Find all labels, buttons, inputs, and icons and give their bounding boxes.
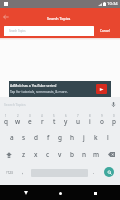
staticText: ?123 xyxy=(6,171,13,175)
staticText: Search Topics xyxy=(9,29,26,33)
staticText: d xyxy=(34,133,38,142)
staticText: e xyxy=(28,117,32,126)
staticText: r xyxy=(41,117,44,126)
staticText: w xyxy=(15,117,21,126)
staticText: x xyxy=(34,150,38,159)
button[interactable]: s xyxy=(18,129,30,146)
staticText: c xyxy=(46,150,50,159)
staticText: , xyxy=(22,169,24,176)
button[interactable]: z xyxy=(18,146,30,163)
button[interactable]: Search xyxy=(104,167,114,177)
button[interactable]: j xyxy=(78,129,90,146)
button[interactable]: b xyxy=(66,146,78,163)
button[interactable]: 8 xyxy=(84,112,96,129)
staticText: g xyxy=(58,133,62,142)
button[interactable]: AdMob has a YouTube series! xyxy=(9,81,111,97)
button[interactable]: ?123 xyxy=(2,164,16,181)
button[interactable]: 5 xyxy=(48,112,60,129)
button[interactable]: f xyxy=(42,129,54,146)
staticText: 3 xyxy=(29,114,31,118)
staticText: v xyxy=(58,150,62,159)
staticText: AdMob has a YouTube series! xyxy=(10,83,57,88)
staticText: m xyxy=(93,150,100,159)
button[interactable]: x xyxy=(30,146,42,163)
staticText: 2 xyxy=(17,114,19,118)
button[interactable]: 2 xyxy=(12,112,24,129)
button[interactable]: Recents xyxy=(86,185,104,200)
button[interactable]: Shift xyxy=(0,146,18,163)
button[interactable]: Search Topics xyxy=(4,26,94,36)
button[interactable]: Comma xyxy=(17,164,29,181)
staticText: y xyxy=(64,117,68,126)
staticText: p xyxy=(112,117,116,126)
staticText: 9 xyxy=(101,114,103,118)
button[interactable]: Backspace xyxy=(102,146,120,163)
button[interactable]: k xyxy=(90,129,102,146)
staticText: 4 xyxy=(41,114,43,118)
staticText: 1 xyxy=(5,114,7,118)
button[interactable]: g xyxy=(54,129,66,146)
button[interactable]: Play video xyxy=(96,84,107,94)
button[interactable]: Cancel xyxy=(94,26,115,36)
staticText: f xyxy=(47,133,50,142)
button[interactable]: l xyxy=(102,129,114,146)
staticText: Tap for tutorials, screencasts, & more. xyxy=(10,90,68,94)
button[interactable]: Home xyxy=(51,185,69,200)
button[interactable]: n xyxy=(78,146,90,163)
button[interactable]: a xyxy=(6,129,18,146)
button[interactable]: Voice input xyxy=(109,100,118,109)
button[interactable]: 9 xyxy=(96,112,108,129)
staticText: Search Topics xyxy=(47,16,71,21)
staticText: a xyxy=(10,133,14,142)
button[interactable]: 4 xyxy=(36,112,48,129)
staticText: Cancel xyxy=(100,29,110,33)
staticText: b xyxy=(70,150,74,159)
staticText: o xyxy=(100,117,104,126)
button[interactable]: h xyxy=(66,129,78,146)
button[interactable]: 3 xyxy=(24,112,36,129)
staticText: t xyxy=(53,117,56,126)
staticText: j xyxy=(83,133,85,142)
staticText: Search Topics xyxy=(4,102,26,107)
staticText: 0 xyxy=(113,114,115,118)
button[interactable]: d xyxy=(30,129,42,146)
button[interactable]: Back xyxy=(0,11,12,23)
staticText: i xyxy=(89,117,91,126)
staticText: 6 xyxy=(65,114,67,118)
staticText: k xyxy=(94,133,98,142)
staticText: 8 xyxy=(89,114,91,118)
staticText: l xyxy=(107,133,109,142)
button[interactable]: Back xyxy=(17,185,35,200)
staticText: 5 xyxy=(53,114,55,118)
button[interactable]: 1 xyxy=(0,112,12,129)
staticText: 7 xyxy=(77,114,79,118)
button[interactable]: v xyxy=(54,146,66,163)
button[interactable]: 6 xyxy=(60,112,72,129)
button[interactable]: m xyxy=(90,146,102,163)
button[interactable]: c xyxy=(42,146,54,163)
button[interactable]: Period xyxy=(89,164,99,181)
staticText: n xyxy=(82,150,87,159)
staticText: 10:34 xyxy=(107,1,118,7)
staticText: h xyxy=(70,133,75,142)
button[interactable]: 7 xyxy=(72,112,84,129)
staticText: . xyxy=(93,169,95,176)
staticText: u xyxy=(76,117,81,126)
staticText: q xyxy=(4,117,8,126)
staticText: z xyxy=(22,150,26,159)
staticText: s xyxy=(22,133,26,142)
button[interactable]: 0 xyxy=(108,112,120,129)
